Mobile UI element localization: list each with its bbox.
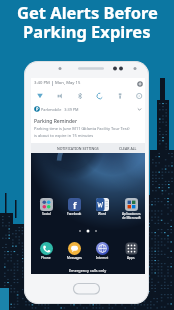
staticText: Mon, May 15 xyxy=(55,80,81,86)
button[interactable]: Internet xyxy=(92,242,112,264)
staticText: Apps xyxy=(127,256,135,260)
button[interactable]: Social xyxy=(36,198,56,220)
button[interactable]: Apps xyxy=(121,242,141,264)
button[interactable]: Messages xyxy=(64,242,84,264)
button[interactable]: Word xyxy=(92,198,112,220)
staticText: Internet xyxy=(96,256,109,260)
staticText: Social xyxy=(42,212,51,216)
button[interactable]: f xyxy=(64,198,84,220)
staticText: Get Alerts Before xyxy=(17,1,158,23)
button[interactable]: NOTIFICATION SETTINGS xyxy=(45,143,111,153)
staticText: Parking time is June M11 (Atlanta Facili… xyxy=(34,126,130,131)
staticText: Parking Reminder xyxy=(34,118,78,125)
button[interactable]: Phone xyxy=(36,242,56,264)
staticText: NOTIFICATION SETTINGS xyxy=(57,146,99,151)
staticText: Parkmobile 3:39 PM xyxy=(41,107,79,112)
staticText: Messages xyxy=(67,256,82,260)
button[interactable]: CLEAR ALL xyxy=(113,143,143,153)
staticText: de Microsoft xyxy=(122,216,141,220)
staticText: Emergency calls only xyxy=(69,268,107,273)
button[interactable]: Parkmobile 3:39 PM xyxy=(31,104,145,143)
staticText: CLEAR ALL xyxy=(119,146,137,151)
staticText: Facebook xyxy=(67,212,82,216)
staticText: Phone xyxy=(41,256,51,260)
staticText: Word xyxy=(98,212,107,216)
staticText: Aplicaciones xyxy=(122,212,141,216)
staticText: is about to expire in 15 minutes xyxy=(34,133,94,138)
staticText: f xyxy=(73,199,77,211)
staticText: 3:40 PM xyxy=(34,80,50,86)
button[interactable]: Aplicaciones xyxy=(121,198,141,220)
staticText: Parking Expires xyxy=(23,20,151,42)
